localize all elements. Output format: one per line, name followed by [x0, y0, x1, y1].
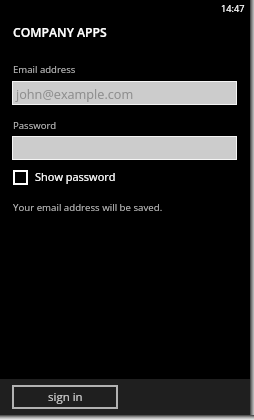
button[interactable]: john@example.com — [13, 82, 236, 104]
staticText: Password — [13, 119, 57, 132]
staticText: sign in — [48, 389, 83, 405]
staticText: Email address — [13, 63, 76, 76]
button[interactable]: Show password — [12, 166, 124, 186]
button[interactable]: sign in — [12, 385, 118, 409]
staticText: Show password — [35, 169, 116, 184]
staticText: john@example.com — [16, 85, 134, 102]
staticText: Your email address will be saved. — [13, 201, 163, 214]
staticText: COMPANY APPS — [13, 24, 107, 41]
staticText: 14:47 — [221, 2, 245, 15]
